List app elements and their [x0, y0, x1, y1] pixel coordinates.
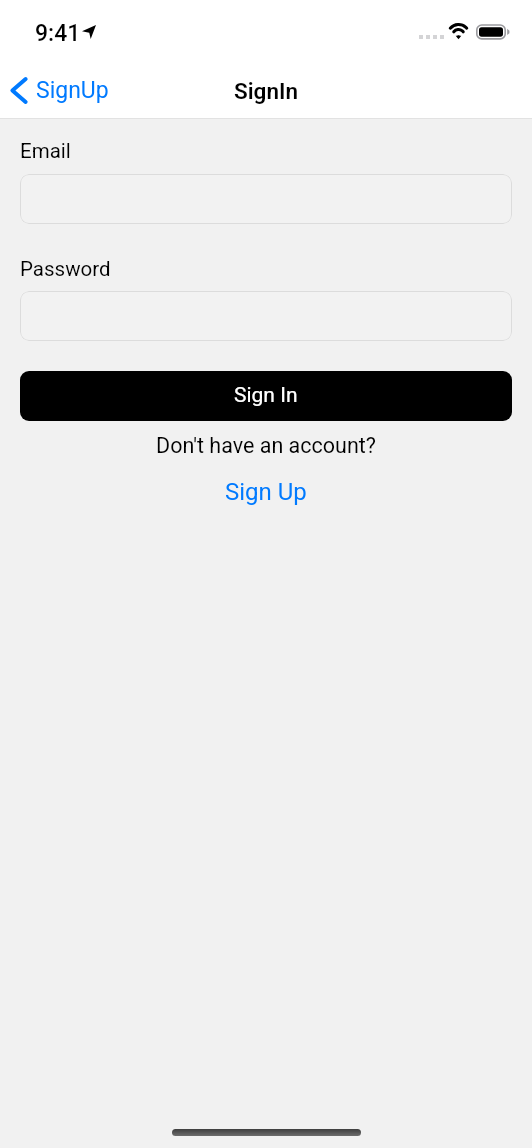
- staticText: SignIn: [234, 78, 298, 104]
- staticText: Email: [20, 139, 71, 163]
- staticText: Don't have an account?: [0, 433, 532, 458]
- button[interactable]: Back to SignUp: [10, 77, 109, 104]
- button[interactable]: Sign In: [20, 371, 512, 421]
- button[interactable]: Sign Up: [0, 478, 532, 506]
- staticText: Sign In: [234, 383, 298, 408]
- button[interactable]: Password input field: [20, 291, 512, 341]
- button[interactable]: Email input field: [20, 174, 512, 224]
- staticText: Password: [20, 257, 111, 281]
- staticText: SignUp: [36, 77, 109, 104]
- staticText: Sign Up: [225, 478, 307, 506]
- staticText: 9:41: [35, 20, 81, 47]
